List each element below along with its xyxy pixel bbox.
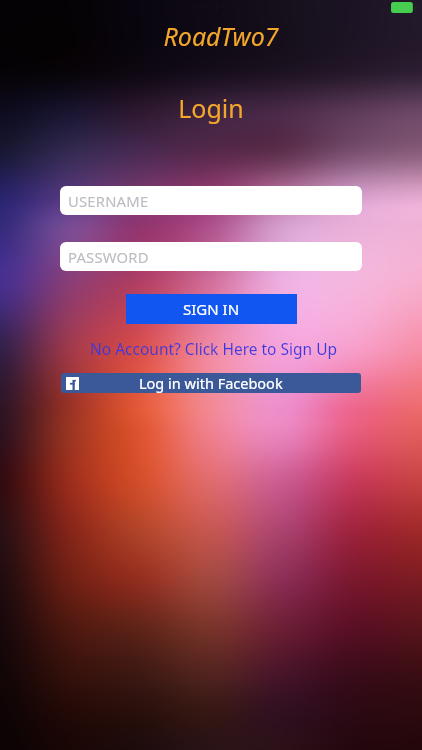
button[interactable]: SIGN IN (126, 294, 297, 324)
button[interactable]: PASSWORD (60, 242, 362, 271)
button[interactable]: Log in with Facebook (61, 373, 361, 393)
staticText: SIGN IN (183, 299, 240, 319)
staticText: Log in with Facebook (139, 373, 283, 393)
staticText: Login (0, 91, 422, 125)
button[interactable]: USERNAME (60, 186, 362, 215)
staticText: No Account? Click Here to Sign Up (90, 338, 338, 359)
staticText: USERNAME (68, 191, 149, 211)
staticText: RoadTwo7 (10, 19, 422, 53)
button[interactable]: No Account? Click Here to Sign Up (63, 337, 365, 359)
staticText: PASSWORD (68, 247, 149, 267)
